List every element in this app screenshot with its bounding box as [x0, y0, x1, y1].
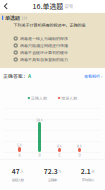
staticText: 34人 — [36, 118, 43, 122]
staticText: 病毒是一种人为编制的程序 — [20, 36, 68, 41]
staticText: (2/6) — [63, 3, 72, 9]
staticText: 2.1 — [81, 166, 91, 176]
staticText: % — [58, 169, 61, 174]
staticText: 72.3 — [44, 166, 58, 176]
staticText: 5人 — [17, 143, 22, 147]
staticText: 16.单选题 — [32, 1, 63, 11]
staticText: D — [78, 153, 80, 157]
staticText: 47 — [12, 166, 20, 176]
button[interactable]: 查看解析 › — [84, 73, 102, 79]
staticText: 4人 — [57, 144, 62, 148]
staticText: 平均得分 — [81, 177, 93, 182]
staticText: C — [58, 153, 60, 157]
staticText: 病毒只能通过网络进行传播 — [20, 43, 68, 48]
staticText: 4人 — [77, 144, 82, 148]
staticText: A — [28, 72, 31, 79]
staticText: 人 — [20, 169, 23, 174]
staticText: 答题人数 — [11, 177, 23, 182]
staticText: 查看解析 › — [84, 73, 102, 79]
staticText: 病毒不会破坏计算机的硬件 — [20, 50, 68, 55]
staticText: 病毒不具有自我复制的能力 — [20, 57, 68, 62]
button[interactable]: 病毒只能通过网络进行传播 — [13, 42, 103, 48]
staticText: 1分 — [21, 15, 27, 20]
staticText: B — [38, 153, 40, 157]
button[interactable]: 病毒不具有自我复制的能力 — [13, 56, 103, 62]
staticText: 正确答案： — [3, 72, 28, 79]
button[interactable]: 病毒不会破坏计算机的硬件 — [13, 49, 103, 55]
staticText: 下列关于计算机病毒的叙述中，正确的是 — [13, 22, 85, 28]
staticText: 正确人数 — [30, 95, 47, 101]
staticText: 正确率 — [48, 177, 57, 182]
button[interactable]: Back — [0, 0, 12, 12]
staticText: 分 — [91, 169, 94, 174]
staticText: A — [18, 153, 20, 157]
staticText: 单选题 — [5, 14, 20, 22]
staticText: 错误人数 — [60, 95, 77, 101]
button[interactable]: 病毒是一种人为编制的程序 — [13, 35, 103, 41]
